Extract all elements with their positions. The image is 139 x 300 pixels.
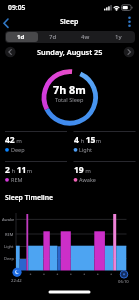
staticText: Awake [2, 217, 15, 222]
staticText: Light [4, 244, 14, 249]
staticText: 7d [49, 33, 57, 41]
staticText: Awake [79, 176, 96, 183]
staticText: 1d [17, 33, 25, 41]
button[interactable]: 7d [37, 31, 69, 43]
staticText: Deep [4, 256, 14, 261]
staticText: 4w [81, 33, 90, 41]
staticText: Sunday, August 25 [37, 47, 103, 57]
staticText: 2 h 11m [5, 164, 33, 176]
staticText: REM [11, 176, 23, 183]
staticText: Deep [11, 146, 25, 153]
staticText: 19 m [74, 164, 91, 176]
staticText: 06:10 [118, 279, 129, 285]
staticText: 22:42 [11, 278, 22, 284]
button[interactable]: 1y [102, 31, 135, 43]
button[interactable] [123, 46, 135, 58]
staticText: 09:05 [8, 3, 26, 12]
staticText: Sleep [60, 17, 79, 27]
staticText: 7h 8m [53, 82, 86, 97]
staticText: Sleep Timeline [5, 193, 54, 202]
staticText: 42 m [5, 134, 22, 146]
button[interactable]: 4w [69, 31, 102, 43]
staticText: 1y [115, 33, 122, 41]
button[interactable]: 1d [5, 31, 37, 43]
staticText: REM [5, 232, 14, 237]
staticText: Light [79, 146, 93, 153]
staticText: 4 h 15m [74, 134, 102, 146]
button[interactable] [4, 46, 16, 58]
staticText: Total Sleep [55, 96, 84, 104]
button[interactable] [122, 14, 138, 30]
button[interactable] [0, 14, 16, 30]
